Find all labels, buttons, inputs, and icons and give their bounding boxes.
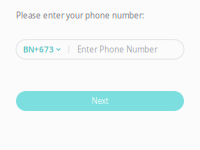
staticText: Please enter your phone number: — [16, 10, 144, 21]
staticText: Enter Phone Number — [77, 44, 157, 55]
staticText: Next — [91, 96, 108, 106]
button[interactable]: Next — [16, 91, 184, 111]
button[interactable]: BN+673 — [16, 40, 68, 59]
staticText: BN+673 — [23, 44, 54, 55]
button[interactable]: Enter Phone Number — [69, 40, 184, 59]
